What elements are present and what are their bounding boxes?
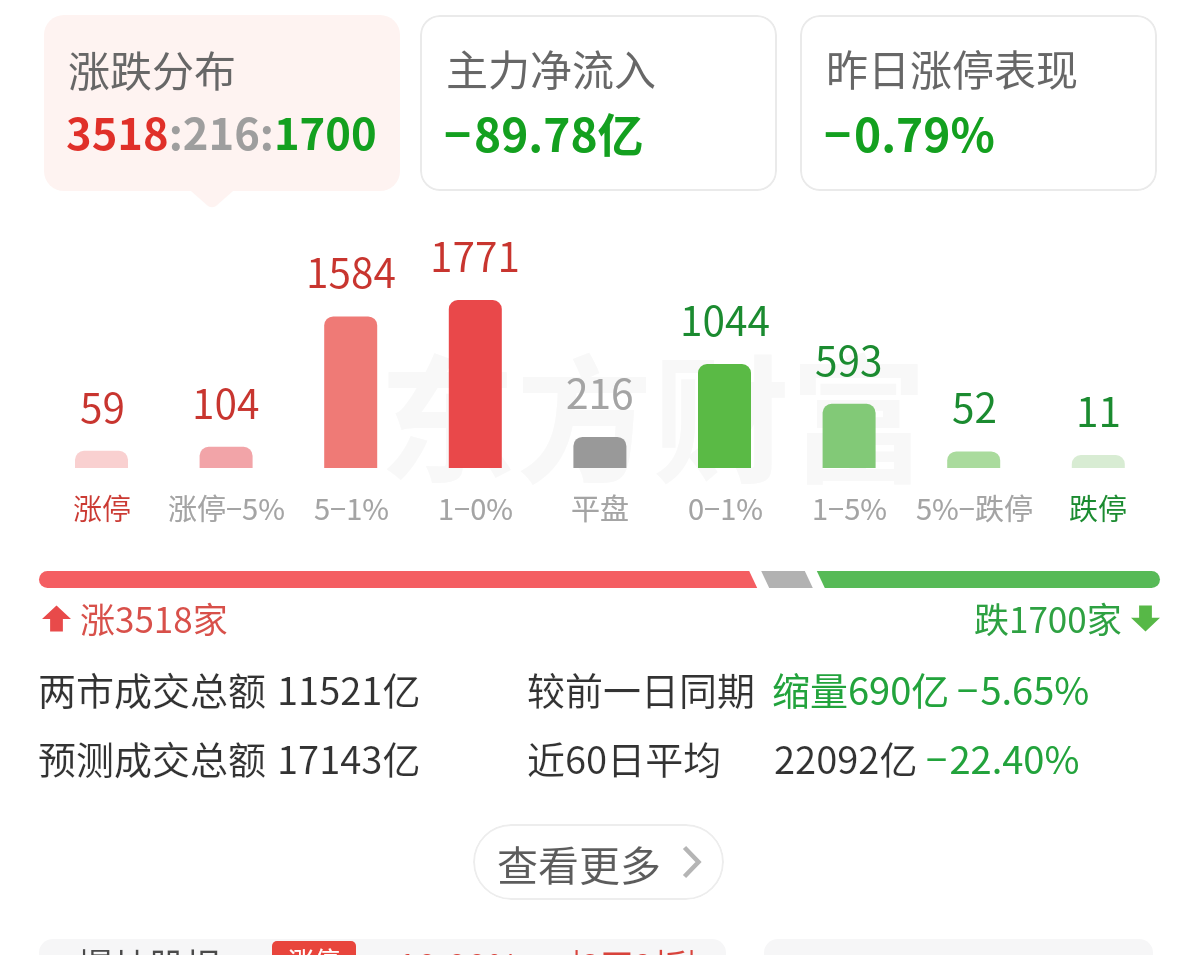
staticText: 东方财富 — [379, 313, 928, 511]
staticText: 跌1700家 — [974, 592, 1122, 643]
button[interactable]: 主力净流入 — [420, 15, 777, 191]
button[interactable]: 涨跌分布 — [44, 15, 400, 191]
button[interactable]: 查看更多 — [473, 824, 724, 900]
staticText: 1−5% — [812, 486, 887, 528]
staticText: 52 — [952, 376, 997, 435]
staticText: 5%−跌停 — [916, 486, 1033, 528]
staticText: 主力净流入 — [446, 37, 657, 98]
staticText: 0−1% — [688, 486, 763, 528]
staticText: 跌停 — [1069, 486, 1128, 528]
staticText: 涨跌分布 — [68, 38, 237, 99]
staticText: 22092亿 — [774, 730, 918, 785]
staticText: 涨3518家 — [80, 592, 228, 643]
staticText: 593 — [815, 329, 883, 388]
staticText: 平盘 — [571, 486, 630, 528]
staticText: 1−0% — [438, 486, 513, 528]
staticText: 缩量690亿 — [772, 661, 950, 716]
staticText: 1044 — [680, 289, 770, 348]
staticText: 11521亿 — [277, 661, 421, 716]
staticText: 17143亿 — [277, 730, 421, 785]
button[interactable]: 爆炒股坝 — [39, 939, 726, 955]
staticText: 涨停 — [288, 941, 341, 955]
staticText: 两市成交总额 — [38, 661, 267, 716]
staticText: 216 — [566, 362, 634, 421]
staticText: 涨停 — [73, 486, 132, 528]
button[interactable]: 昨日涨停表现 — [800, 15, 1157, 191]
staticText: − 5.65% — [957, 661, 1090, 716]
staticText: 昨日涨停表现 — [826, 37, 1079, 98]
staticText: 104 — [192, 372, 260, 431]
staticText: 59 — [80, 376, 125, 435]
staticText: |3天2板| — [572, 940, 697, 955]
staticText: − 22.40% — [926, 730, 1080, 785]
staticText: 爆炒股坝 — [77, 939, 222, 955]
staticText: 5−1% — [314, 486, 389, 528]
staticText: 1584 — [306, 241, 396, 300]
staticText: 3518:216:1700 — [66, 100, 377, 163]
staticText: − 89.78亿 — [444, 99, 644, 166]
staticText: − 0.79% — [824, 99, 995, 166]
staticText: 预测成交总额 — [38, 730, 267, 785]
staticText: 近60日平均 — [527, 730, 722, 785]
staticText: 1771 — [430, 225, 520, 284]
staticText: 查看更多 — [497, 833, 661, 892]
staticText: 涨停−5% — [168, 486, 285, 528]
staticText: 11 — [1076, 380, 1121, 439]
staticText: 10.00% — [397, 939, 521, 955]
staticText: 较前一日同期 — [527, 661, 756, 716]
